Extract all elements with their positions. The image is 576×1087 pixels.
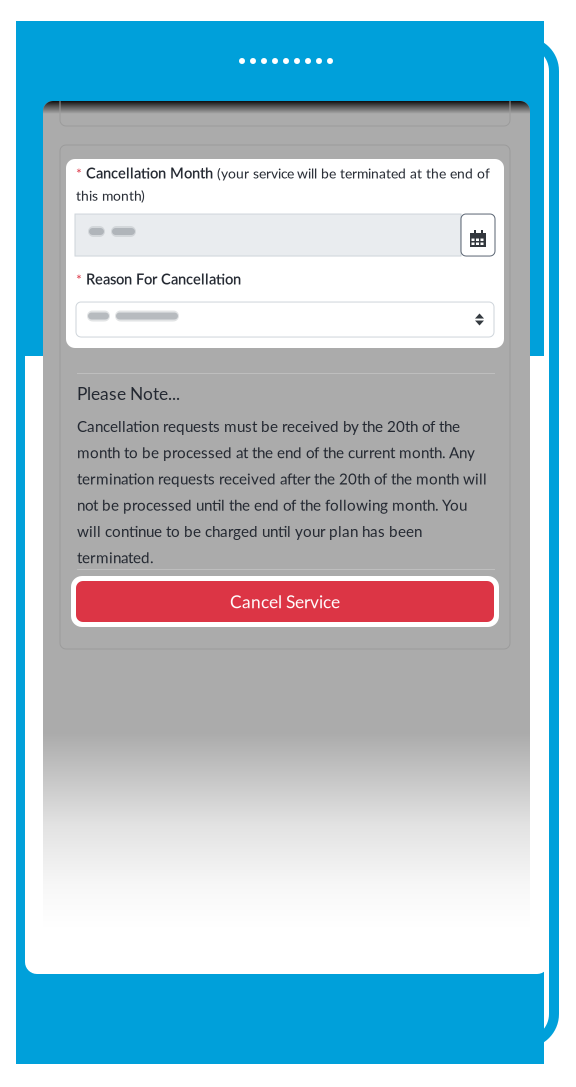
- staticText: will continue to be charged until your p…: [77, 522, 422, 540]
- button[interactable]: Choose month: [461, 214, 495, 256]
- staticText: Cancel Service: [230, 591, 340, 612]
- staticText: *: [76, 165, 82, 181]
- staticText: Please Note...: [77, 383, 180, 404]
- button[interactable]: Cancel Service: [71, 576, 499, 627]
- staticText: *: [76, 271, 82, 287]
- staticText: termination requests received after the …: [77, 469, 487, 488]
- staticText: this month): [76, 187, 145, 204]
- staticText: Cancellation requests must be received b…: [77, 417, 460, 435]
- staticText: not be processed until the end of the fo…: [77, 496, 467, 514]
- staticText: terminated.: [77, 548, 154, 566]
- staticText: month to be processed at the end of the …: [77, 443, 475, 461]
- staticText: (your service will be terminated at the …: [217, 165, 490, 181]
- staticText: Reason For Cancellation: [86, 270, 241, 288]
- staticText: Cancellation Month: [86, 164, 213, 182]
